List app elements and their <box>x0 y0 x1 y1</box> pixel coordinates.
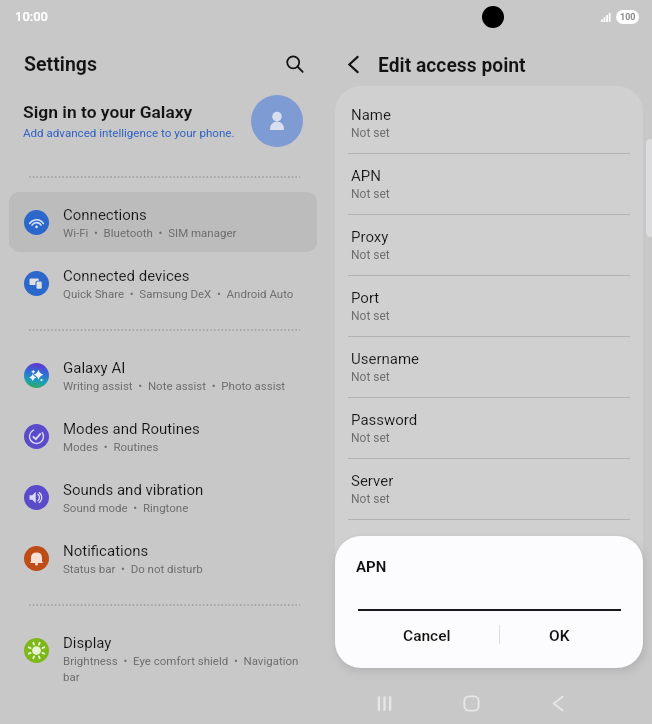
button[interactable]: Username <box>335 330 643 391</box>
staticText: Not set <box>351 431 390 445</box>
button[interactable]: Galaxy AI <box>9 345 317 405</box>
button[interactable]: Recents <box>369 688 400 719</box>
staticText: Sign in to your Galaxy <box>23 102 193 122</box>
staticText: 10:00 <box>15 9 48 24</box>
staticText: Proxy <box>351 228 389 246</box>
staticText: Sound mode • Ringtone <box>63 501 353 514</box>
staticText: Not set <box>351 187 390 201</box>
staticText: Galaxy AI <box>63 359 126 377</box>
staticText: Modes • Routines <box>63 440 353 453</box>
staticText: OK <box>549 627 570 645</box>
button[interactable]: Port <box>335 269 643 330</box>
button[interactable]: Back <box>340 48 374 82</box>
button[interactable]: Display <box>9 620 317 680</box>
staticText: Settings <box>24 53 97 76</box>
staticText: Display <box>63 634 112 652</box>
button[interactable]: Sign in to your Galaxy <box>0 94 326 152</box>
button[interactable]: Notifications <box>9 528 317 588</box>
staticText: Cancel <box>403 627 451 645</box>
button[interactable]: Search <box>276 45 310 79</box>
staticText: Not set <box>351 370 390 384</box>
staticText: Port <box>351 289 380 307</box>
button[interactable]: Sounds and vibration <box>9 467 317 527</box>
button[interactable]: Modes and Routines <box>9 406 317 466</box>
staticText: Not set <box>351 309 390 323</box>
button[interactable]: Back <box>541 688 572 719</box>
staticText: Writing assist • Note assist • Photo ass… <box>63 379 353 392</box>
button[interactable]: Home <box>456 688 487 719</box>
staticText: Username <box>351 350 420 368</box>
staticText: Modes and Routines <box>63 420 200 438</box>
staticText: Not set <box>351 492 390 506</box>
staticText: Not set <box>351 248 390 262</box>
staticText: Connections <box>63 206 147 224</box>
button[interactable]: APN <box>335 147 643 208</box>
staticText: Connected devices <box>63 267 190 285</box>
button[interactable]: Password <box>335 391 643 452</box>
staticText: 100 <box>620 12 636 23</box>
button[interactable]: Name <box>335 86 643 147</box>
button[interactable]: Proxy <box>335 208 643 269</box>
staticText: Brightness • Eye comfort shield • Naviga… <box>63 654 311 683</box>
staticText: Password <box>351 411 418 429</box>
staticText: Status bar • Do not disturb <box>63 562 353 575</box>
staticText: Server <box>351 472 394 490</box>
staticText: Add advanced intelligence to your phone. <box>23 126 235 140</box>
staticText: Notifications <box>63 542 149 560</box>
button[interactable]: Cancel <box>359 614 494 658</box>
staticText: APN <box>351 167 381 185</box>
staticText: APN <box>356 558 387 576</box>
button[interactable]: Connected devices <box>9 253 317 313</box>
staticText: Edit access point <box>378 54 526 77</box>
button[interactable]: Server <box>335 452 643 513</box>
staticText: Sounds and vibration <box>63 481 204 499</box>
button[interactable]: OK <box>492 614 627 658</box>
button[interactable]: Connections <box>9 192 317 252</box>
staticText: Quick Share • Samsung DeX • Android Auto <box>63 287 353 300</box>
staticText: Name <box>351 106 391 124</box>
staticText: Wi-Fi • Bluetooth • SIM manager <box>63 226 353 239</box>
staticText: Not set <box>351 126 390 140</box>
